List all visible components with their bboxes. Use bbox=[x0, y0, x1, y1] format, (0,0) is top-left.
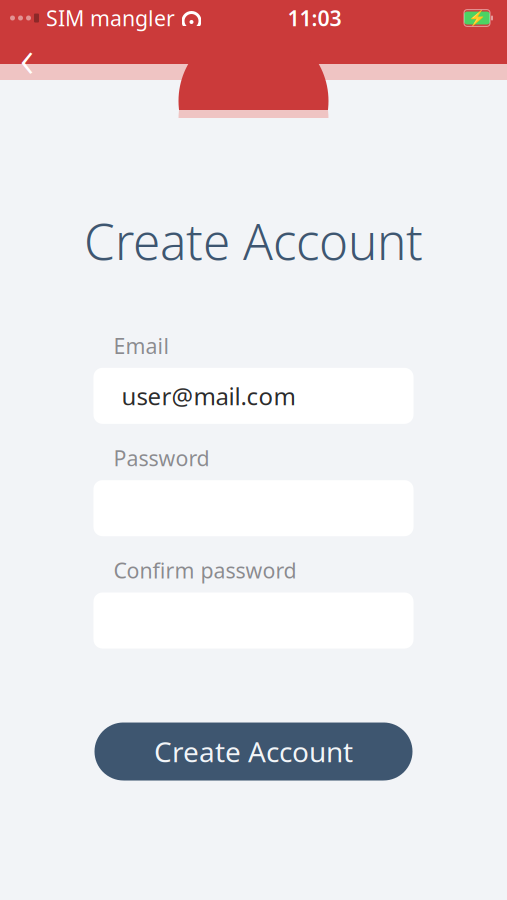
staticText: Create Account bbox=[84, 208, 423, 273]
staticText: ‹ bbox=[20, 22, 34, 92]
button[interactable]: Create Account bbox=[94, 722, 412, 780]
staticText: SIM mangler bbox=[46, 4, 175, 32]
staticText: 11:03 bbox=[287, 4, 341, 32]
staticText: Create Account bbox=[154, 733, 353, 770]
staticText: Confirm password bbox=[113, 556, 296, 584]
button[interactable]: Back bbox=[4, 34, 50, 80]
staticText: Email bbox=[113, 331, 169, 360]
staticText: ⚡ bbox=[468, 10, 486, 26]
staticText: Password bbox=[113, 444, 209, 472]
staticText: user@mail.com bbox=[121, 380, 295, 412]
